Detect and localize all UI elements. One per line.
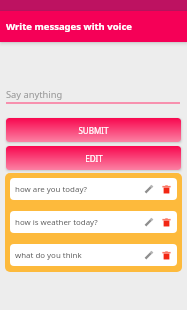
staticText: Write messages with voice <box>6 20 133 33</box>
button[interactable]: Write messages with voice <box>0 11 187 42</box>
button[interactable]: Edit <box>142 183 155 196</box>
button[interactable]: SUBMIT <box>6 118 181 142</box>
button[interactable]: Edit <box>142 249 155 262</box>
button[interactable]: Delete <box>160 249 173 262</box>
button[interactable]: how are you today? <box>10 178 177 200</box>
button[interactable]: what do you think <box>10 244 177 266</box>
button[interactable]: Edit <box>142 216 155 229</box>
button[interactable]: Delete <box>160 216 173 229</box>
staticText: SUBMIT <box>78 125 109 136</box>
staticText: EDIT <box>85 153 103 164</box>
button[interactable]: EDIT <box>6 146 181 170</box>
staticText: what do you think <box>15 250 142 261</box>
staticText: how are you today? <box>15 184 142 195</box>
staticText: how is weather today? <box>15 217 142 228</box>
button[interactable]: how is weather today? <box>10 211 177 233</box>
staticText: Say anything <box>6 88 63 101</box>
button[interactable]: Delete <box>160 183 173 196</box>
